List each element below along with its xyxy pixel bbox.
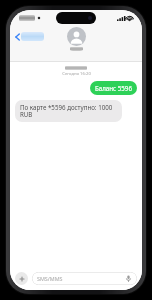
staticText: По карте *5596 доступно: 1000 RUB [20, 103, 117, 119]
button[interactable]: По карте *5596 доступно: 1000 RUB [15, 100, 122, 122]
button[interactable]: Voice message [125, 275, 132, 282]
button[interactable]: Add attachment [15, 272, 28, 285]
button[interactable]: Back [13, 30, 46, 43]
button[interactable]: SMS/MMS [32, 272, 137, 285]
button[interactable]: Contact [67, 27, 86, 51]
staticText: Баланс 5596 [95, 84, 132, 92]
staticText: Сегодня 16:20 [62, 71, 91, 77]
button[interactable]: Баланс 5596 [90, 81, 137, 95]
staticText: SMS/MMS [37, 275, 63, 282]
